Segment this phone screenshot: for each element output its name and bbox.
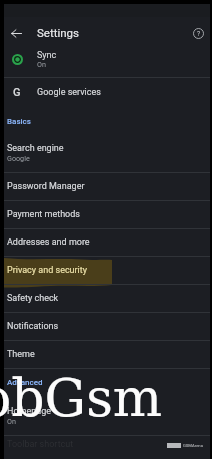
staticText: Google	[7, 154, 30, 162]
staticText: Homepage	[7, 406, 51, 417]
staticText: Theme	[7, 349, 35, 360]
staticText: Payment methods	[7, 209, 80, 220]
button[interactable]: Addresses and more	[4, 228, 210, 256]
staticText: On	[37, 60, 46, 68]
staticText: Addresses and more	[7, 237, 90, 248]
staticText: obGsm	[0, 368, 163, 429]
button[interactable]: Password Manager	[4, 172, 210, 200]
staticText: ?	[197, 30, 201, 38]
button[interactable]: G	[4, 78, 210, 105]
staticText: Safety check	[7, 293, 59, 304]
staticText: G	[13, 86, 21, 99]
staticText: Advanced	[7, 378, 43, 387]
staticText: Password Manager	[7, 181, 85, 192]
staticText: Privacy and security	[7, 265, 88, 276]
button[interactable]: Theme	[4, 340, 210, 368]
button[interactable]: Homepage	[4, 403, 210, 435]
staticText: Basics	[7, 117, 31, 126]
button[interactable]: Payment methods	[4, 200, 210, 228]
button[interactable]: Notifications	[4, 312, 210, 340]
staticText: Search engine	[7, 143, 64, 154]
button[interactable]: Sync	[4, 45, 210, 77]
staticText: On	[7, 417, 16, 425]
button[interactable]: Privacy and security	[4, 256, 210, 288]
staticText: GSMArena	[183, 443, 203, 448]
button[interactable]: Search engine	[4, 140, 210, 172]
staticText: Sync	[37, 50, 57, 61]
staticText: Notifications	[7, 321, 59, 332]
staticText: Google services	[37, 87, 101, 98]
button[interactable]: Toolbar shortcut	[4, 435, 210, 459]
staticText: Settings	[37, 26, 79, 39]
staticText: Toolbar shortcut	[7, 439, 74, 450]
button[interactable]: Back	[5, 22, 27, 44]
button[interactable]: Safety check	[4, 284, 210, 312]
button[interactable]: Help	[187, 22, 209, 44]
